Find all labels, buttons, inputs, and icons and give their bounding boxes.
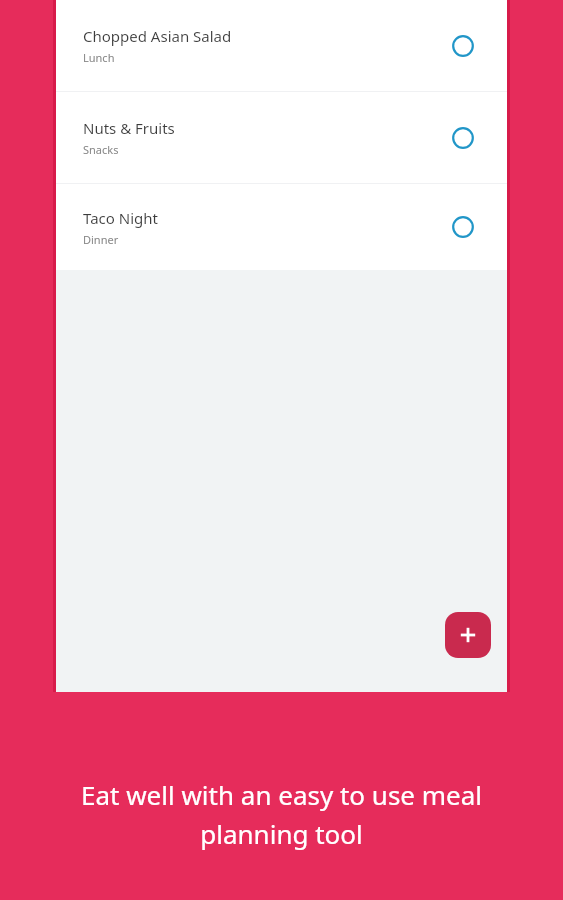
staticText: Dinner — [83, 232, 119, 247]
button[interactable]: Mark Nuts & Fruits complete — [447, 122, 479, 154]
staticText: Eat well with an easy to use meal planni… — [34, 777, 529, 851]
button[interactable]: Nuts & Fruits — [56, 92, 507, 183]
staticText: Snacks — [83, 142, 119, 157]
button[interactable]: Mark Taco Night complete — [447, 211, 479, 243]
button[interactable]: Add meal — [445, 612, 491, 658]
staticText: Taco Night — [83, 208, 158, 228]
button[interactable]: Chopped Asian Salad — [56, 0, 507, 91]
button[interactable]: Taco Night — [56, 184, 507, 270]
staticText: Lunch — [83, 50, 115, 65]
staticText: Chopped Asian Salad — [83, 26, 232, 46]
button[interactable]: Mark Chopped Asian Salad complete — [447, 30, 479, 62]
staticText: Nuts & Fruits — [83, 118, 175, 138]
